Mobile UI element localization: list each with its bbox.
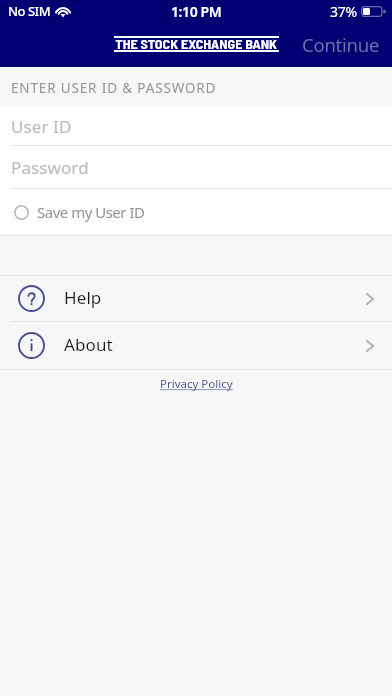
button[interactable]: About	[0, 321, 392, 369]
staticText: Help	[64, 286, 102, 309]
button[interactable]: Continue	[286, 29, 392, 66]
button[interactable]: Help	[0, 276, 392, 321]
staticText: Privacy Policy	[160, 376, 233, 392]
button[interactable]: Save my User ID	[0, 188, 392, 235]
staticText: THE STOCK EXCHANGE BANK	[115, 35, 278, 50]
button[interactable]: Privacy Policy	[154, 374, 239, 394]
button[interactable]: User ID	[0, 105, 392, 145]
button[interactable]: The Stock Exchange Bank	[114, 36, 279, 51]
staticText: 1:10 PM	[171, 2, 222, 21]
button[interactable]: Password	[0, 145, 392, 188]
other: Wi-Fi signal	[55, 4, 71, 16]
staticText: No SIM	[8, 2, 51, 20]
other: Battery 37 percent	[361, 6, 386, 17]
staticText: About	[64, 333, 113, 356]
staticText: User ID	[11, 115, 72, 138]
staticText: Continue	[302, 32, 380, 57]
staticText: ENTER USER ID & PASSWORD	[11, 79, 217, 97]
staticText: Save my User ID	[37, 202, 145, 222]
staticText: 37%	[330, 2, 357, 21]
staticText: Password	[11, 156, 89, 179]
